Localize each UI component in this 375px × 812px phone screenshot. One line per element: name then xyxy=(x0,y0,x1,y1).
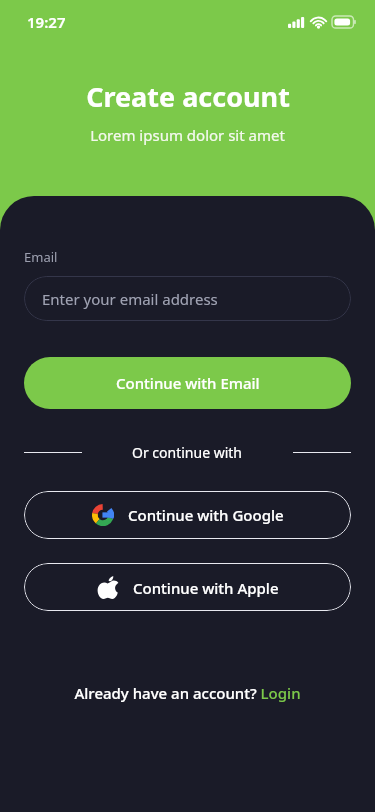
button[interactable]: Already have an account? Login xyxy=(74,683,301,703)
staticText: Email xyxy=(24,248,58,266)
staticText: Continue with Google xyxy=(128,505,284,525)
staticText: Or continue with xyxy=(132,443,243,462)
other: Google xyxy=(92,504,114,526)
button[interactable]: Google xyxy=(24,491,351,539)
button[interactable]: Enter your email address xyxy=(24,276,351,321)
button[interactable]: Apple xyxy=(24,563,351,611)
staticText: Lorem ipsum dolor sit amet xyxy=(90,125,285,145)
button[interactable]: Continue with Email xyxy=(24,357,351,409)
other: Apple xyxy=(96,576,119,599)
staticText: Continue with Email xyxy=(116,373,260,393)
staticText: Create account xyxy=(86,78,290,115)
staticText: 19:27 xyxy=(27,12,66,32)
staticText: Enter your email address xyxy=(42,289,218,309)
staticText: Continue with Apple xyxy=(133,578,279,598)
